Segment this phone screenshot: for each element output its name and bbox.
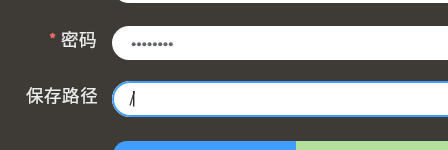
button[interactable] [112,26,448,60]
staticText: 保存路径 [26,82,99,107]
button[interactable]: 确定 [113,141,296,150]
button[interactable] [112,0,448,3]
button[interactable] [112,81,448,117]
staticText: 密码 [61,26,98,51]
